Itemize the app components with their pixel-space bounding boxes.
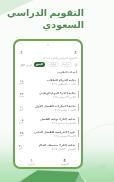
staticText: الخميس ٢٠ فبراير ٢٠٢٥	[52, 147, 76, 150]
staticText: التقويم	[28, 163, 35, 166]
staticText: التقويم الدراسي للعام ١٤٤٦ هـ	[43, 56, 77, 60]
staticText: بداية إجازة نهاية الفصل	[40, 117, 76, 121]
staticText: الأحد ١٠ نوفمبر ٢٠٢٤	[55, 108, 76, 111]
staticText: ١١	[20, 79, 24, 82]
staticText: الخميس ٥ ديسمبر ٢٠٢٤	[52, 121, 76, 124]
staticText: بداية إجازة اليوم الوطني	[39, 91, 76, 95]
button[interactable]: دراسة	[61, 62, 72, 67]
button[interactable]: الرئيسية	[48, 157, 81, 167]
staticText: عرض الكل	[20, 63, 33, 67]
staticText: الاثنين ٢٣ سبتمبر ٢٠٢٤	[53, 95, 76, 98]
button[interactable]: Profile	[72, 49, 78, 55]
button[interactable]: ١٠	[15, 101, 81, 114]
staticText: أغس	[19, 82, 24, 85]
button[interactable]: Menu	[18, 49, 24, 55]
button[interactable]: Filter	[74, 63, 78, 67]
staticText: إجازات	[49, 63, 57, 66]
staticText: السعودي	[42, 19, 84, 30]
staticText: فبر	[19, 147, 23, 150]
staticText: الجميع	[36, 63, 43, 66]
button[interactable]: الجميع	[34, 62, 45, 67]
staticText: ٢٣	[20, 92, 24, 95]
staticText: أحداث التقويم	[57, 70, 77, 74]
staticText: دراسة	[63, 63, 70, 66]
staticText: بداية اختبارات الفصل الأول	[35, 104, 76, 108]
staticText: عودة الدراسة للفصل الثاني	[34, 130, 76, 134]
staticText: نوف	[19, 108, 24, 111]
staticText: الرئيسية	[61, 163, 69, 166]
staticText: ١٠	[20, 105, 24, 108]
staticText: ٠٥	[20, 118, 24, 121]
staticText: ٢٩	[20, 131, 24, 134]
staticText: بداية الدوام للطلاب	[47, 78, 76, 82]
button[interactable]: ٢٠	[15, 140, 81, 153]
button[interactable]: ١١	[15, 75, 81, 88]
button[interactable]: التقويم	[15, 157, 48, 167]
staticText: التقويم الدراسي	[7, 6, 84, 19]
staticText: ٢٠	[19, 144, 23, 147]
button[interactable]: ٠٥	[15, 114, 81, 127]
staticText: ديس	[19, 134, 24, 137]
button[interactable]: ٢٩	[15, 127, 81, 140]
staticText: سبت	[19, 95, 24, 98]
staticText: ديس	[19, 121, 24, 124]
staticText: الأحد ٢٩ ديسمبر ٢٠٢٤	[54, 134, 76, 137]
button[interactable]: إجازات	[47, 62, 59, 67]
staticText: بداية إجازة منتصف العام	[39, 143, 76, 147]
staticText: الأحد ١١ أغسطس ٢٠٢٤	[52, 82, 76, 85]
button[interactable]: ٢٣	[15, 88, 81, 101]
